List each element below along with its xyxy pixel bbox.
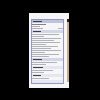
button[interactable] (32, 74, 63, 77)
button[interactable] (32, 30, 63, 33)
button[interactable] (32, 80, 63, 84)
button[interactable] (32, 19, 63, 23)
button[interactable] (32, 58, 63, 61)
button[interactable] (32, 66, 63, 69)
